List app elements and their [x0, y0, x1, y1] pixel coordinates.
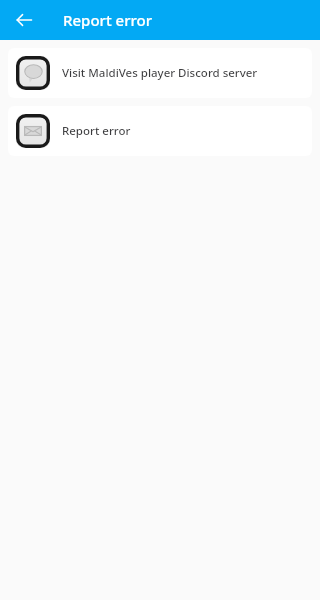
staticText: Visit MaldiVes player Discord server [62, 65, 258, 81]
staticText: Report error [63, 10, 153, 30]
button[interactable]: Back [10, 6, 38, 34]
button[interactable]: Discord chat [8, 48, 312, 98]
other: Email [16, 114, 50, 148]
other: Discord chat [16, 56, 50, 90]
button[interactable]: Email [8, 106, 312, 156]
staticText: Report error [62, 123, 131, 139]
